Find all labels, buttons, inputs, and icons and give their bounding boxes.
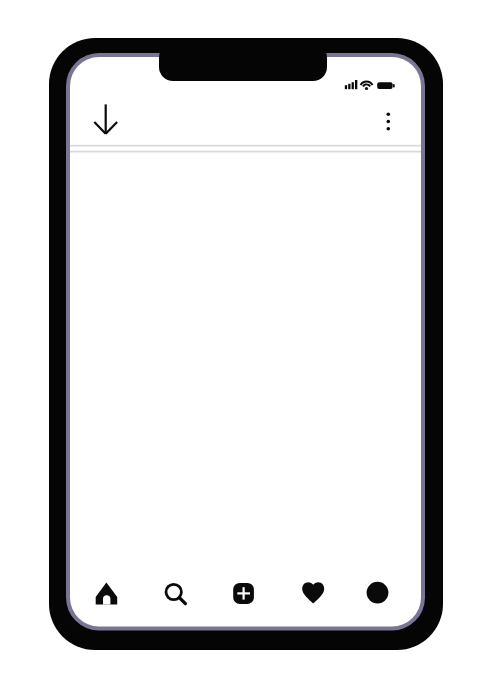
button[interactable] [376, 106, 401, 136]
button[interactable] [156, 575, 190, 611]
button[interactable] [88, 95, 124, 141]
button[interactable] [296, 575, 330, 611]
button[interactable] [227, 575, 261, 611]
button[interactable] [90, 575, 124, 611]
button[interactable] [361, 575, 395, 611]
